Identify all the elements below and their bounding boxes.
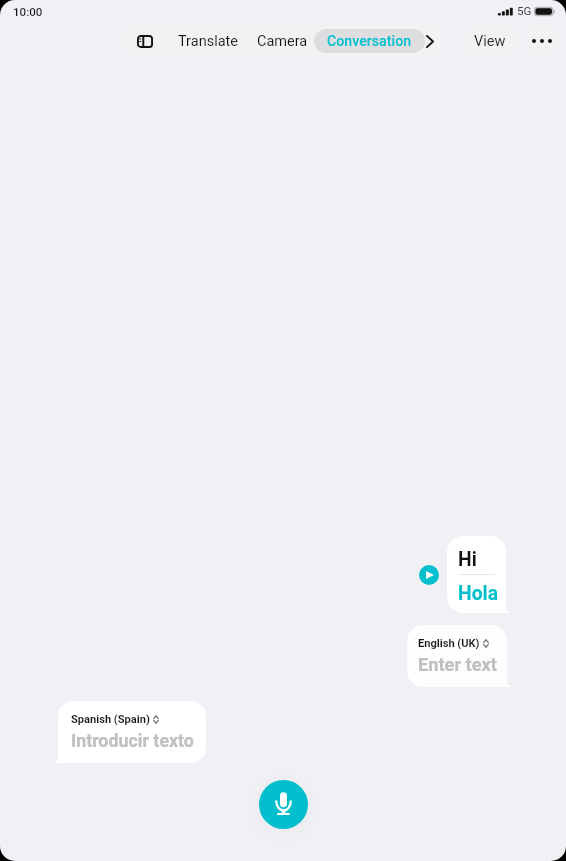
staticText: Conversation (327, 33, 412, 50)
button[interactable]: More options (526, 25, 558, 57)
button[interactable]: English (UK) (407, 625, 507, 687)
staticText: Hi (458, 548, 477, 571)
button[interactable]: View (463, 24, 517, 58)
button[interactable]: Translate (167, 24, 249, 58)
staticText: Camera (257, 33, 308, 50)
staticText: 10:00 (13, 5, 43, 19)
staticText: Translate (178, 33, 238, 50)
button[interactable]: Play translation (419, 565, 439, 585)
button[interactable]: Start listening (259, 780, 308, 829)
staticText: English (UK) (418, 637, 480, 650)
button[interactable]: Hi (447, 536, 506, 613)
button[interactable]: Camera (249, 24, 314, 58)
staticText: Enter text (418, 654, 497, 675)
button[interactable]: Conversation (314, 29, 425, 53)
staticText: Spanish (Spain) (71, 713, 150, 726)
staticText: Introducir texto (71, 730, 194, 751)
button[interactable]: Spanish (Spain) (58, 701, 206, 763)
staticText: View (474, 33, 506, 50)
button[interactable]: More modes (425, 24, 443, 58)
staticText: 5G (517, 4, 532, 18)
button[interactable]: Split view (122, 24, 167, 58)
staticText: Hola (458, 582, 498, 605)
